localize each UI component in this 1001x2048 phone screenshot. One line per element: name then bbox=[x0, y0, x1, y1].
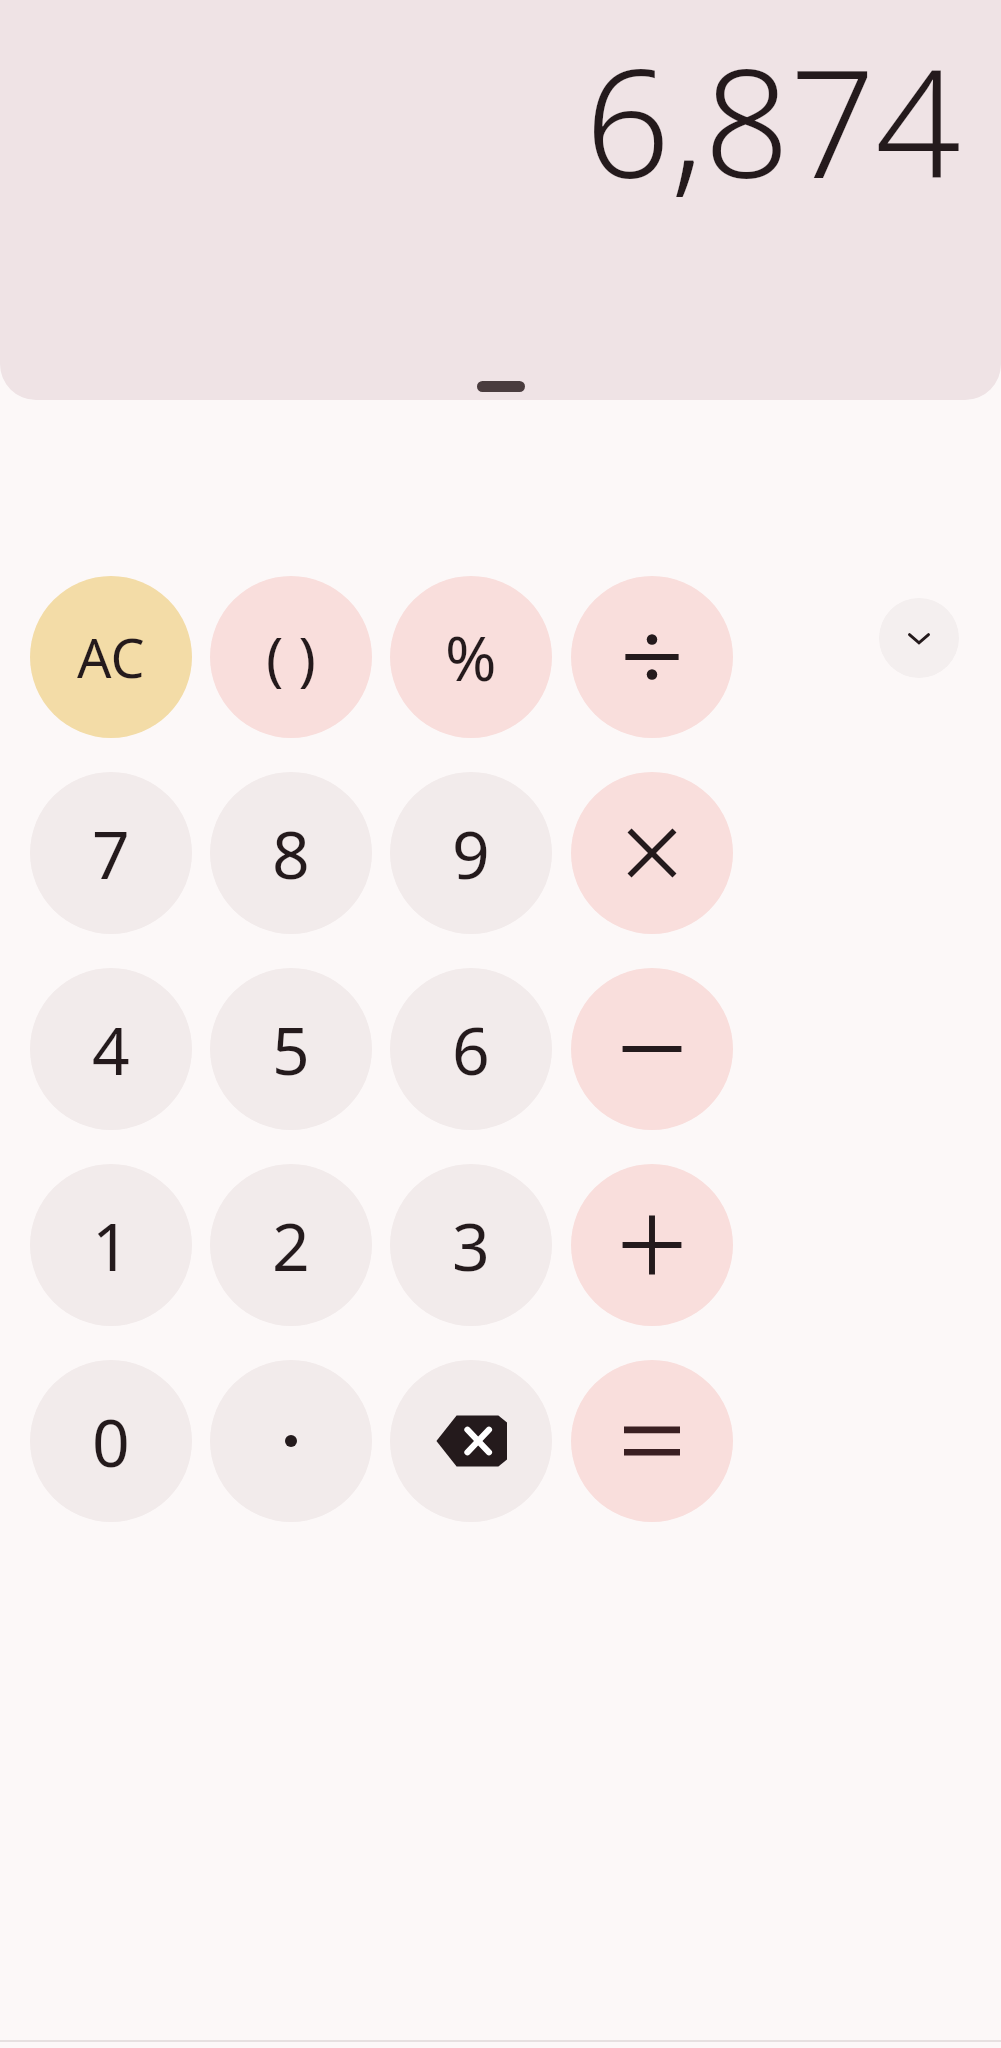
staticText: 9 bbox=[452, 808, 490, 898]
staticText: 2 bbox=[272, 1200, 310, 1290]
other: Divide bbox=[617, 622, 687, 692]
staticText: AC bbox=[77, 620, 145, 694]
button[interactable]: 2 bbox=[210, 1164, 372, 1326]
button[interactable]: Equals bbox=[571, 1360, 733, 1522]
button[interactable]: % bbox=[390, 576, 552, 738]
button[interactable]: 5 bbox=[210, 968, 372, 1130]
button[interactable]: 7 bbox=[30, 772, 192, 934]
staticText: 6,874 bbox=[0, 18, 961, 222]
staticText: √ bbox=[95, 606, 125, 660]
staticText: 5 bbox=[272, 1004, 310, 1094]
button[interactable]: Backspace bbox=[390, 1360, 552, 1522]
button[interactable]: 9 bbox=[390, 772, 552, 934]
other: Decimal point bbox=[266, 1416, 316, 1466]
button[interactable]: 4 bbox=[30, 968, 192, 1130]
staticText: 3 bbox=[452, 1200, 490, 1290]
button[interactable]: ( ) bbox=[210, 576, 372, 738]
staticText: 6 bbox=[452, 1004, 490, 1094]
staticText: 4 bbox=[92, 1004, 130, 1094]
other: Minus bbox=[617, 1014, 687, 1084]
button[interactable]: 1 bbox=[30, 1164, 192, 1326]
staticText: % bbox=[445, 615, 497, 699]
staticText: π bbox=[275, 602, 306, 665]
staticText: ^ bbox=[457, 602, 484, 665]
staticText: 7 bbox=[92, 808, 130, 898]
staticText: 8 bbox=[272, 808, 310, 898]
button[interactable]: 3 bbox=[390, 1164, 552, 1326]
button[interactable]: 6 bbox=[390, 968, 552, 1130]
staticText: ( ) bbox=[266, 618, 316, 697]
button[interactable]: 8 bbox=[210, 772, 372, 934]
button[interactable]: Decimal point bbox=[210, 1360, 372, 1522]
button[interactable]: π bbox=[245, 588, 335, 678]
other: Multiply bbox=[619, 820, 685, 886]
other: Plus bbox=[617, 1210, 687, 1280]
staticText: ! bbox=[644, 602, 657, 665]
button[interactable]: ^ bbox=[425, 588, 515, 678]
button[interactable]: 0 bbox=[30, 1360, 192, 1522]
button[interactable]: √ bbox=[65, 588, 155, 678]
other: Backspace bbox=[435, 1412, 507, 1470]
staticText: 0 bbox=[92, 1396, 130, 1486]
button[interactable]: Multiply bbox=[571, 772, 733, 934]
button[interactable] bbox=[477, 381, 525, 392]
button[interactable]: Plus bbox=[571, 1164, 733, 1326]
button[interactable]: Expand functions bbox=[879, 598, 959, 678]
staticText: 1 bbox=[92, 1200, 130, 1290]
other: Equals bbox=[617, 1406, 687, 1476]
button[interactable]: Divide bbox=[571, 576, 733, 738]
button[interactable]: Minus bbox=[571, 968, 733, 1130]
button[interactable]: AC bbox=[30, 576, 192, 738]
button[interactable]: ! bbox=[605, 588, 695, 678]
